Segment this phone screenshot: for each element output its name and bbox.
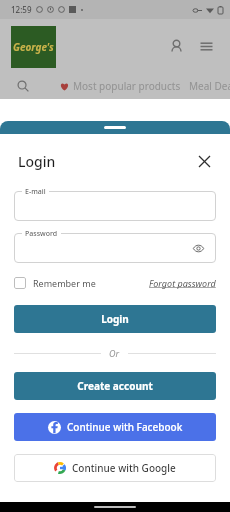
staticText: Password [25, 229, 58, 239]
button[interactable]: Continue with Google [14, 454, 216, 482]
staticText: Most popular products [73, 79, 181, 93]
button[interactable]: Close [192, 149, 216, 173]
button[interactable]: Login [14, 305, 216, 333]
button[interactable]: Search [12, 75, 34, 97]
button[interactable]: Remember me [14, 275, 96, 291]
staticText: Create account [77, 379, 153, 393]
button[interactable] [14, 233, 216, 263]
staticText: 12:59 [11, 4, 32, 15]
staticText: Continue with Google [72, 461, 176, 475]
staticText: Or [109, 347, 120, 359]
button[interactable]: Show password [189, 239, 207, 257]
button[interactable] [14, 191, 216, 221]
button[interactable]: Create account [14, 372, 216, 400]
staticText: Remember me [33, 277, 96, 289]
staticText: George's [13, 40, 54, 54]
staticText: Login [101, 312, 129, 326]
staticText: Continue with Facebook [67, 420, 183, 434]
staticText: E-mail [25, 187, 46, 197]
button[interactable]: Continue with Facebook [14, 413, 216, 441]
button[interactable]: Menu [194, 34, 218, 58]
staticText: Meal Deal [189, 79, 230, 93]
button[interactable]: Account [164, 34, 188, 58]
button[interactable]: Forgot password [149, 275, 216, 291]
staticText: Login [18, 152, 56, 171]
